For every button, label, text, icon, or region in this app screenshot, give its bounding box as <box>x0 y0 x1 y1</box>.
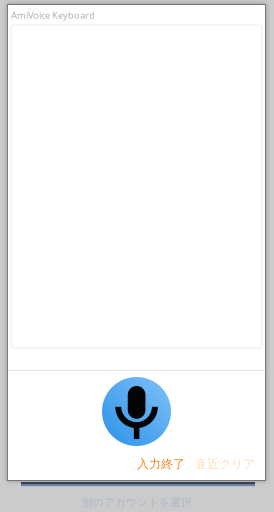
button[interactable]: Start recording <box>102 377 171 446</box>
staticText: 直近クリア <box>195 457 255 471</box>
staticText: AmiVoice Keyboard <box>11 9 95 21</box>
button[interactable]: 直近クリア <box>195 457 255 471</box>
button[interactable]: 別のアカウントを選択 <box>0 495 274 510</box>
button[interactable]: 入力終了 <box>137 457 185 471</box>
staticText: 入力終了 <box>137 457 185 471</box>
staticText: 別のアカウントを選択 <box>82 496 192 509</box>
